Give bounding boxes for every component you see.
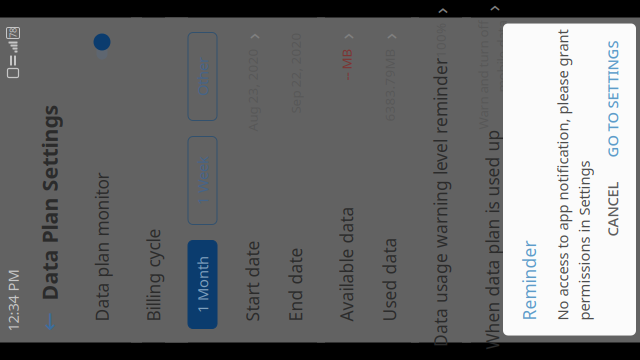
staticText: Aug 23, 2020 — [368, 104, 451, 121]
staticText: End date — [178, 144, 252, 167]
button[interactable]: 1 Month — [171, 48, 259, 77]
staticText: Warn and turn off — [370, 334, 479, 352]
staticText: Billing cycle — [178, 2, 271, 25]
button[interactable]: 1 Week — [275, 48, 363, 77]
staticText: 6383.79MB — [378, 241, 451, 258]
button[interactable]: Data usage warning level reminder — [132, 279, 508, 322]
staticText: Other — [404, 53, 443, 72]
staticText: Available data — [178, 195, 293, 218]
button[interactable]: Other — [379, 48, 467, 77]
staticText: When data plan is used up — [150, 341, 370, 360]
button[interactable]: Used data — [157, 228, 482, 271]
staticText: Sep 22, 2020 — [386, 147, 467, 164]
staticText: Data usage warning level reminder — [153, 289, 442, 312]
staticText: › — [488, 338, 495, 360]
staticText: Start date — [178, 101, 259, 124]
button[interactable]: Start date — [157, 91, 482, 134]
staticText: 1 Month — [187, 53, 244, 72]
staticText: 1 Week — [295, 53, 344, 72]
staticText: Used data — [178, 238, 262, 261]
staticText: 100% — [442, 292, 477, 309]
button[interactable]: When data plan is used up — [129, 331, 510, 360]
button[interactable]: Available data — [157, 185, 482, 228]
button[interactable]: End date — [157, 134, 482, 177]
staticText: › — [486, 286, 493, 315]
staticText: -- MB — [419, 198, 451, 215]
